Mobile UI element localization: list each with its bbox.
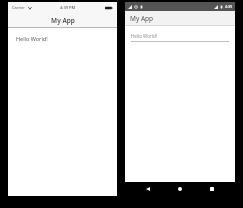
staticText: 4:39 PM: [60, 5, 76, 10]
button[interactable]: Home: [171, 182, 189, 196]
button[interactable]: Recent apps: [203, 182, 221, 196]
button[interactable]: Back: [139, 182, 157, 196]
staticText: My App: [130, 14, 154, 23]
button[interactable]: My App: [125, 11, 235, 25]
staticText: My App: [51, 16, 75, 25]
staticText: Hello World!: [16, 35, 48, 42]
staticText: 4:39: [225, 4, 232, 9]
staticText: Carrier: [12, 5, 26, 10]
staticText: Hello World!: [131, 33, 157, 39]
